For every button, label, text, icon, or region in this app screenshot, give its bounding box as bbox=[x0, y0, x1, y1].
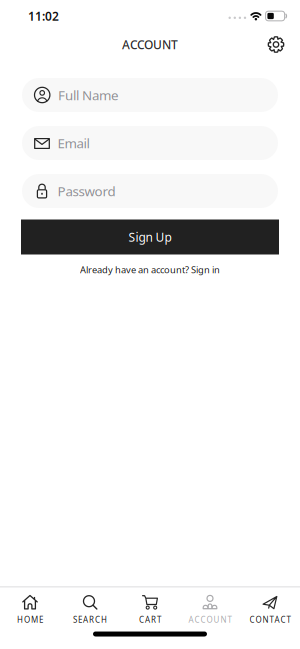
staticText: Already have an account? Sign in bbox=[80, 263, 220, 276]
button[interactable]: Email bbox=[22, 126, 278, 160]
staticText: CART bbox=[139, 614, 161, 625]
staticText: Password bbox=[57, 182, 115, 200]
button[interactable]: CART bbox=[120, 594, 180, 625]
staticText: Sign Up bbox=[128, 229, 171, 245]
button[interactable]: Password bbox=[22, 174, 278, 208]
staticText: ACCOUNT bbox=[122, 36, 178, 52]
button[interactable]: Already have an account? Sign in bbox=[80, 263, 220, 276]
staticText: CONTACT bbox=[249, 614, 290, 625]
button[interactable]: Settings bbox=[264, 32, 288, 56]
button[interactable]: HOME bbox=[0, 594, 60, 625]
staticText: ACCOUNT bbox=[188, 614, 231, 625]
button[interactable]: CONTACT bbox=[240, 594, 300, 625]
button[interactable]: ACCOUNT bbox=[180, 594, 240, 625]
button[interactable]: SEARCH bbox=[60, 594, 120, 625]
staticText: SEARCH bbox=[73, 614, 107, 625]
staticText: Email bbox=[57, 134, 89, 152]
staticText: 11:02 bbox=[28, 8, 59, 24]
staticText: Full Name bbox=[58, 86, 119, 104]
button[interactable]: Sign Up bbox=[21, 219, 279, 254]
staticText: HOME bbox=[17, 614, 43, 625]
button[interactable]: Full Name bbox=[22, 78, 278, 112]
